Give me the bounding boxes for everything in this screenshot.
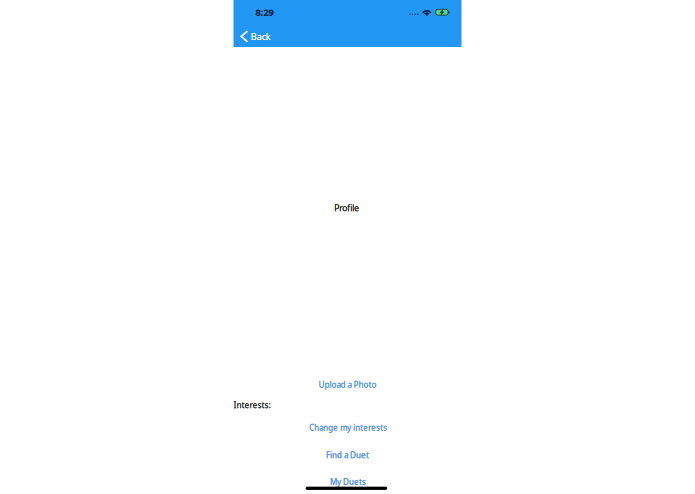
staticText: Interests: [233,400,270,410]
staticText: Change my interests [309,422,387,433]
staticText: Back [250,30,270,43]
staticText: My Duets [330,476,366,487]
button[interactable]: Find a Duet [323,448,371,463]
staticText: Upload a Photo [318,379,376,390]
button[interactable]: Change my interests [307,420,389,435]
button[interactable]: Upload a Photo [316,377,378,392]
button[interactable]: My Duets [327,474,369,489]
button[interactable]: Back [233,23,289,50]
staticText: Find a Duet [326,450,369,460]
staticText: Profile [334,202,359,214]
staticText: 8:29 [255,6,273,18]
